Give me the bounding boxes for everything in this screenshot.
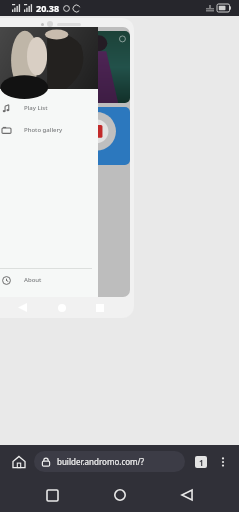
button[interactable]: Play List (0, 97, 98, 119)
staticText: Photo gallery (24, 126, 63, 134)
staticText: Play List (24, 104, 48, 112)
staticText: 20.38 (36, 2, 60, 14)
staticText: About (24, 276, 42, 284)
button[interactable]: Back (172, 480, 202, 510)
button[interactable]: More options (213, 452, 233, 472)
button[interactable]: About (0, 269, 98, 291)
button[interactable]: Home (105, 480, 135, 510)
button[interactable]: Tabs: 1 open (191, 452, 211, 472)
button[interactable]: Home (8, 451, 30, 473)
button[interactable]: builder.andromo.com/?_ga=2.4480 (34, 451, 185, 472)
staticText: builder.andromo.com/?_ga=2.4480 (57, 456, 178, 467)
staticText: 1 (199, 457, 204, 468)
button[interactable]: Recent apps (37, 480, 67, 510)
button[interactable]: Photo gallery (0, 119, 98, 141)
